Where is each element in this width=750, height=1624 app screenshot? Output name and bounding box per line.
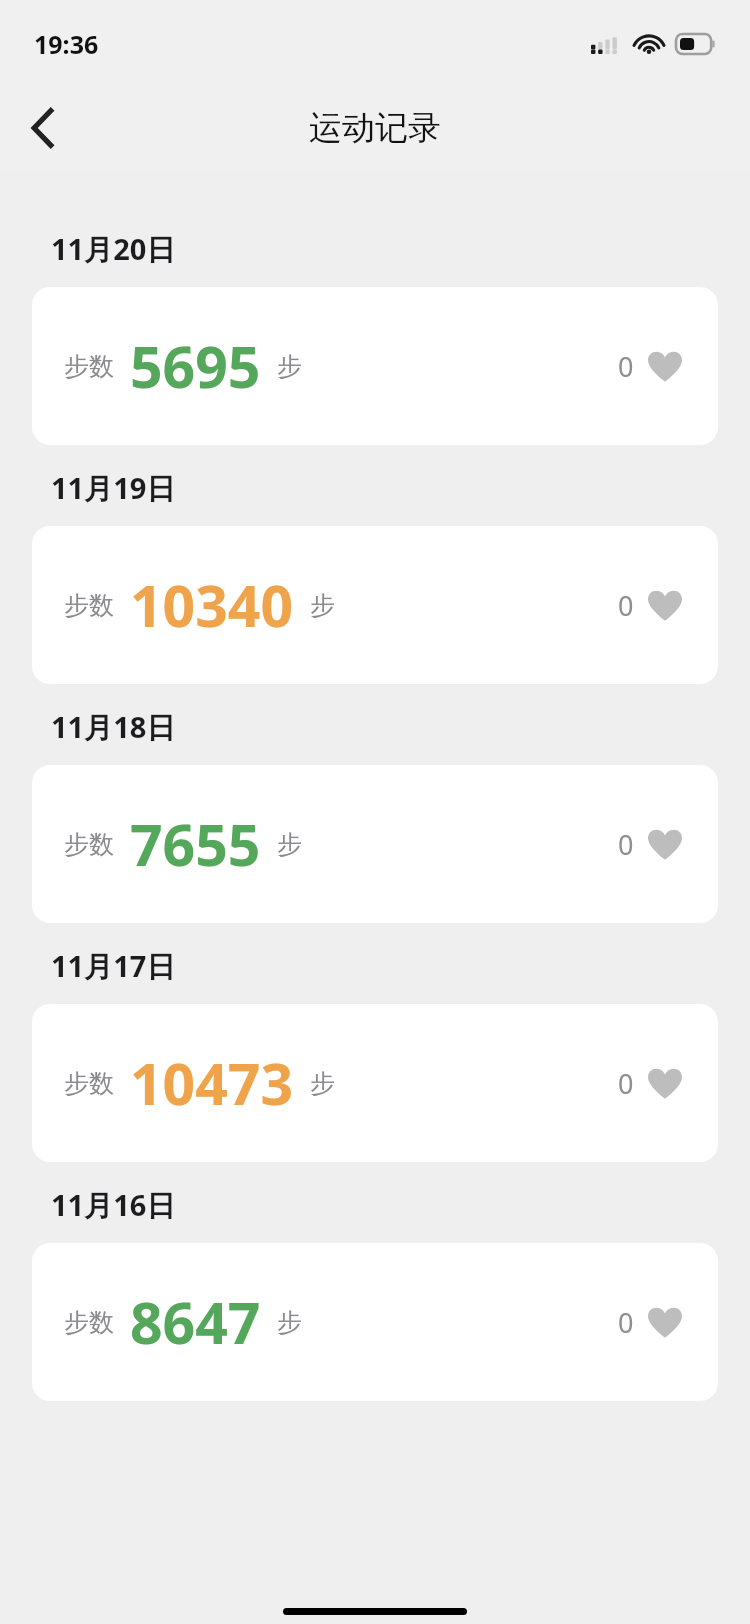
staticText: 步 bbox=[310, 1068, 335, 1099]
button[interactable]: Like bbox=[612, 820, 688, 869]
staticText: 0 bbox=[618, 587, 634, 624]
button[interactable]: 步数 bbox=[32, 1243, 718, 1401]
button[interactable]: 步数 bbox=[32, 1004, 718, 1162]
staticText: 11月20日 bbox=[51, 229, 176, 269]
button[interactable]: Like bbox=[612, 1059, 688, 1108]
button[interactable]: 步数 bbox=[32, 526, 718, 684]
staticText: 11月17日 bbox=[51, 946, 176, 986]
button[interactable]: Back bbox=[10, 95, 76, 161]
staticText: 10340 bbox=[130, 566, 294, 644]
staticText: 11月16日 bbox=[51, 1185, 176, 1225]
staticText: 8647 bbox=[130, 1283, 261, 1361]
button[interactable]: 步数 bbox=[32, 287, 718, 445]
staticText: 10473 bbox=[130, 1044, 294, 1122]
staticText: 步数 bbox=[64, 829, 114, 860]
staticText: 步 bbox=[310, 590, 335, 621]
staticText: 步数 bbox=[64, 590, 114, 621]
staticText: 步 bbox=[277, 829, 302, 860]
staticText: 0 bbox=[618, 348, 634, 385]
staticText: 步 bbox=[277, 351, 302, 382]
staticText: 步数 bbox=[64, 351, 114, 382]
staticText: 步数 bbox=[64, 1068, 114, 1099]
staticText: 运动记录 bbox=[309, 107, 441, 149]
staticText: 0 bbox=[618, 1304, 634, 1341]
staticText: 7655 bbox=[130, 805, 261, 883]
staticText: 步 bbox=[277, 1307, 302, 1338]
staticText: 0 bbox=[618, 1065, 634, 1102]
button[interactable]: Like bbox=[612, 581, 688, 630]
button[interactable]: 步数 bbox=[32, 765, 718, 923]
staticText: 11月19日 bbox=[51, 468, 176, 508]
staticText: 11月18日 bbox=[51, 707, 176, 747]
staticText: 19:36 bbox=[34, 27, 99, 61]
button[interactable]: Like bbox=[612, 1298, 688, 1347]
staticText: 5695 bbox=[130, 327, 261, 405]
staticText: 0 bbox=[618, 826, 634, 863]
button[interactable]: Like bbox=[612, 342, 688, 391]
staticText: 步数 bbox=[64, 1307, 114, 1338]
